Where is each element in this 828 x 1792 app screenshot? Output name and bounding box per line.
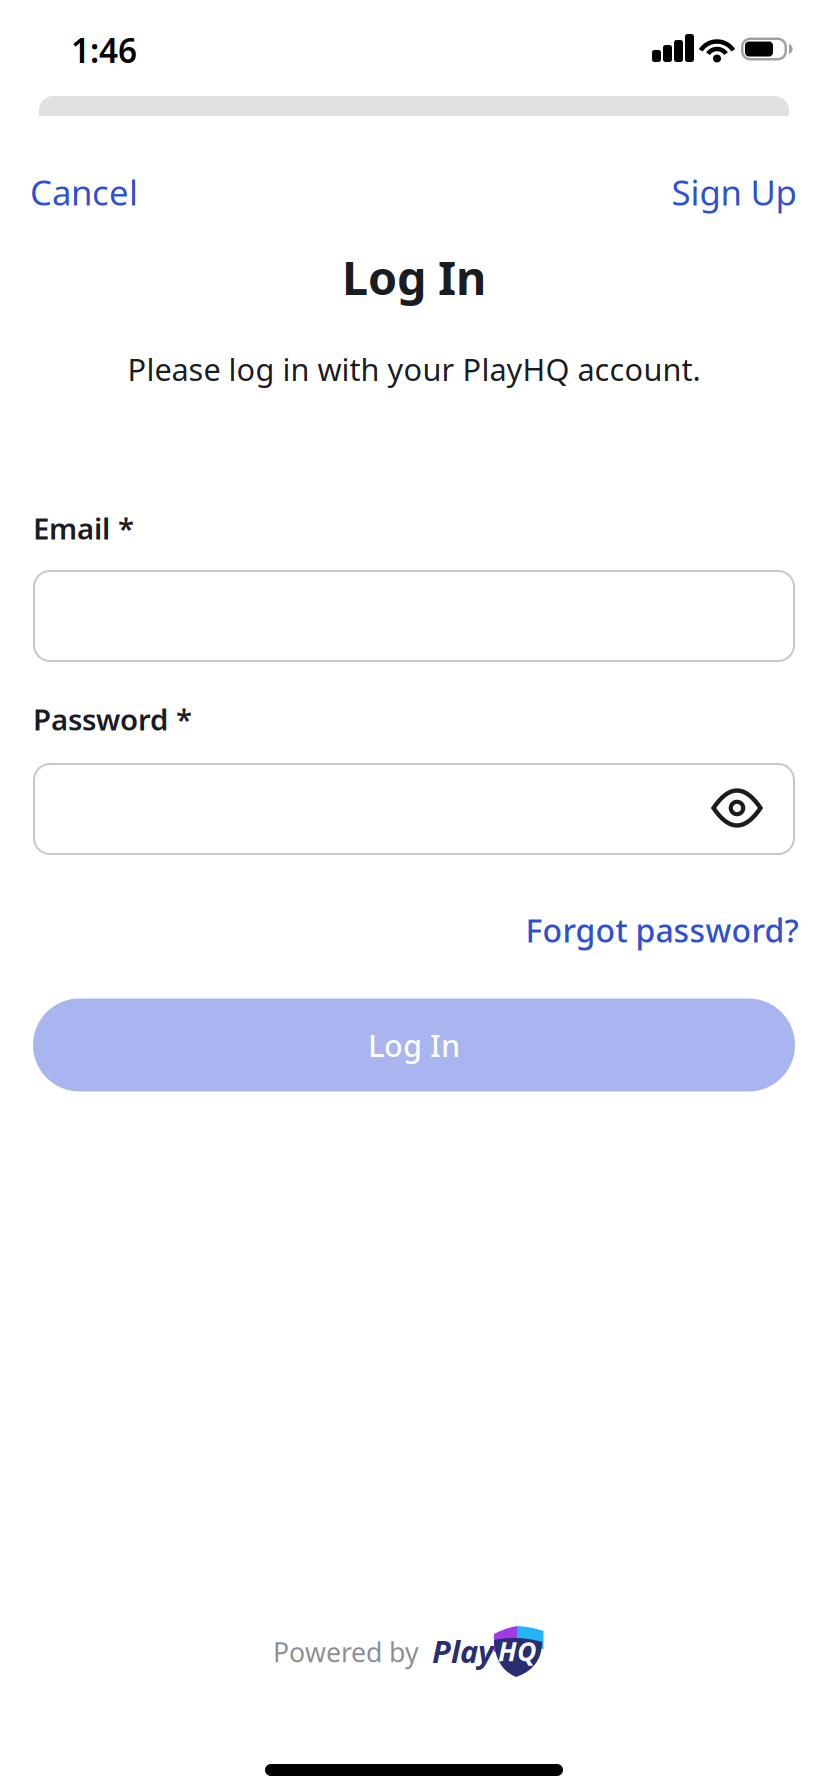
staticText: Please log in with your PlayHQ account. — [127, 349, 700, 389]
staticText: Forgot password? — [525, 909, 798, 951]
staticText: Sign Up — [671, 169, 796, 215]
staticText: Play — [432, 1631, 494, 1671]
button[interactable]: Show password — [707, 778, 767, 838]
button[interactable]: Log In — [33, 998, 795, 1091]
button[interactable]: Password — [33, 763, 795, 855]
staticText: HQ — [498, 1633, 536, 1669]
staticText: Email * — [33, 508, 134, 547]
staticText: Cancel — [30, 169, 138, 215]
staticText: Log In — [368, 1025, 460, 1065]
button[interactable]: Email — [33, 570, 795, 662]
button[interactable]: Cancel — [30, 169, 138, 215]
button[interactable]: Forgot password? — [525, 909, 798, 951]
staticText: Powered by — [273, 1634, 419, 1670]
button[interactable]: Sign Up — [671, 169, 796, 215]
staticText: 1:46 — [71, 28, 137, 72]
staticText: Password * — [33, 699, 192, 738]
staticText: Log In — [342, 246, 486, 308]
